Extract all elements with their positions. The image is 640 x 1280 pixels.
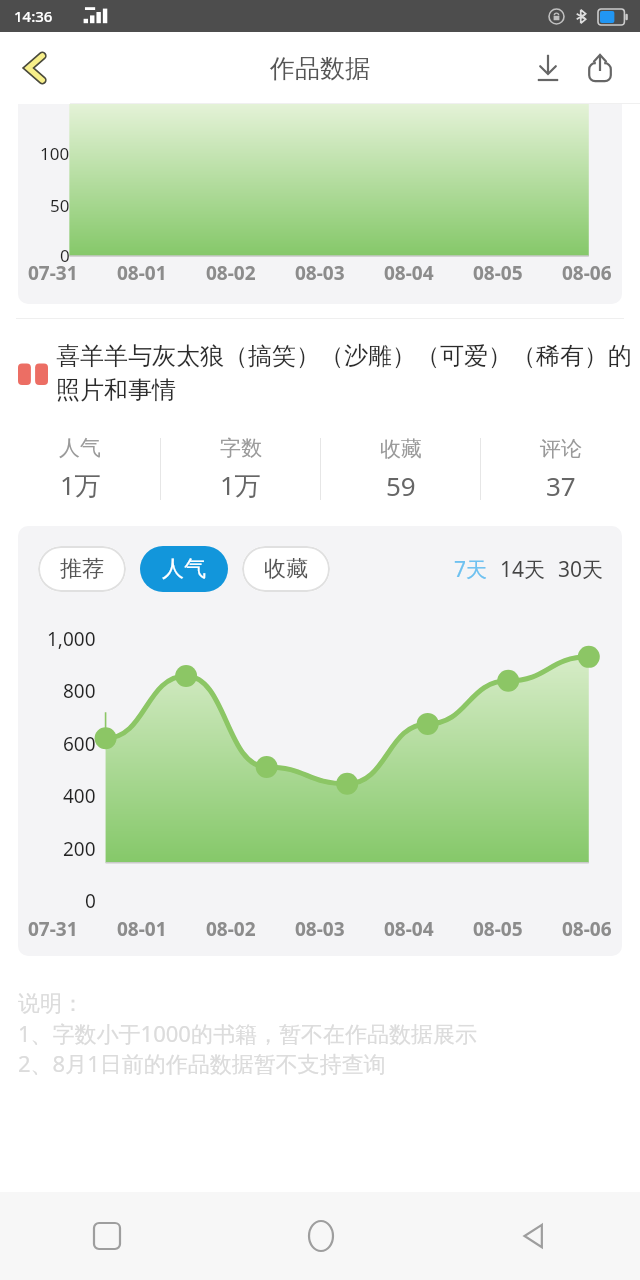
- button[interactable]: 7天: [454, 549, 488, 590]
- staticText: 14天: [500, 555, 546, 584]
- button[interactable]: 喜羊羊与灰太狼（搞笑）（沙雕）（可爱）（稀有）的照片和事情: [18, 341, 632, 406]
- staticText: 人气: [59, 435, 101, 461]
- button[interactable]: Download: [522, 42, 574, 94]
- staticText: 0: [85, 888, 96, 914]
- button[interactable]: Back: [8, 40, 64, 96]
- button[interactable]: 收藏: [242, 546, 330, 592]
- staticText: 推荐: [60, 555, 104, 583]
- staticText: 收藏: [380, 436, 422, 462]
- staticText: 07-31: [28, 260, 78, 286]
- staticText: 1、字数小于1000的书籍，暂不在作品数据展示: [18, 1018, 477, 1048]
- staticText: 800: [63, 678, 96, 704]
- staticText: 37: [546, 468, 576, 503]
- staticText: 08-05: [473, 916, 523, 942]
- staticText: 说明：: [18, 990, 84, 1018]
- button[interactable]: 收藏: [321, 426, 480, 512]
- staticText: 400: [63, 783, 96, 809]
- staticText: 作品数据: [270, 53, 370, 84]
- staticText: 字数: [220, 435, 262, 461]
- button[interactable]: 评论: [481, 426, 640, 512]
- staticText: 08-04: [384, 260, 434, 286]
- button[interactable]: 推荐: [38, 546, 126, 592]
- button[interactable]: 30天: [558, 549, 604, 590]
- button[interactable]: 人气: [140, 546, 228, 592]
- button[interactable]: Back: [427, 1192, 640, 1280]
- staticText: 08-02: [206, 916, 256, 942]
- staticText: 1万: [220, 467, 261, 503]
- staticText: 50: [50, 194, 70, 217]
- staticText: 08-04: [384, 916, 434, 942]
- button[interactable]: Home: [214, 1192, 427, 1280]
- button[interactable]: Share: [574, 42, 626, 94]
- staticText: 评论: [540, 436, 582, 462]
- staticText: 人气: [162, 555, 206, 583]
- staticText: 08-05: [473, 260, 523, 286]
- staticText: 08-06: [562, 260, 612, 286]
- staticText: 600: [63, 731, 96, 757]
- staticText: 08-06: [562, 916, 612, 942]
- staticText: 100: [40, 142, 70, 165]
- staticText: 07-31: [28, 916, 78, 942]
- staticText: 喜羊羊与灰太狼（搞笑）（沙雕）（可爱）（稀有）的照片和事情: [56, 341, 632, 406]
- staticText: 08-03: [295, 916, 345, 942]
- button[interactable]: 字数: [161, 426, 320, 512]
- staticText: 200: [63, 836, 96, 862]
- staticText: 收藏: [264, 555, 308, 583]
- staticText: 1万: [60, 467, 101, 503]
- staticText: 30天: [558, 555, 604, 584]
- button[interactable]: Recents: [0, 1192, 214, 1280]
- staticText: 0: [60, 244, 70, 267]
- staticText: 08-01: [117, 260, 167, 286]
- staticText: 2、8月1日前的作品数据暂不支持查询: [18, 1048, 386, 1078]
- staticText: 1,000: [47, 626, 96, 652]
- staticText: 59: [386, 468, 416, 503]
- staticText: 08-02: [206, 260, 256, 286]
- staticText: 08-03: [295, 260, 345, 286]
- button[interactable]: 人气: [0, 426, 160, 512]
- staticText: 7天: [454, 555, 488, 584]
- staticText: 14:36: [14, 6, 53, 26]
- button[interactable]: 14天: [500, 549, 546, 590]
- staticText: 08-01: [117, 916, 167, 942]
